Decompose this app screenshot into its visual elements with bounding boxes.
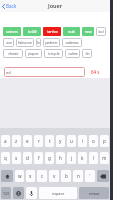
staticText: h	[59, 155, 62, 161]
staticText: calme	[68, 51, 78, 56]
button[interactable]: s	[12, 152, 21, 164]
staticText: Jouer	[48, 2, 63, 9]
button[interactable]: m	[100, 152, 109, 164]
staticText: univers	[6, 29, 18, 34]
button[interactable]: i	[78, 135, 87, 147]
button[interactable]: f	[34, 152, 43, 164]
button[interactable]: Next keyboard	[13, 187, 24, 199]
staticText: retour	[89, 191, 100, 196]
staticText: z	[15, 138, 18, 144]
staticText: brûlé	[28, 29, 37, 34]
button[interactable]: 123	[1, 187, 11, 199]
staticText: r	[38, 138, 40, 144]
button[interactable]: choisir	[3, 49, 23, 58]
staticText: b	[65, 173, 68, 179]
button[interactable]: g	[45, 152, 54, 164]
button[interactable]: calme	[65, 49, 80, 58]
button[interactable]: brûlé	[23, 27, 41, 36]
button[interactable]: tricycle	[44, 49, 63, 58]
button[interactable]: rose	[82, 27, 94, 36]
button[interactable]: n	[73, 170, 83, 182]
button[interactable]: Delete	[97, 170, 109, 182]
staticText: m	[102, 155, 107, 161]
staticText: y	[59, 138, 62, 144]
button[interactable]: t	[45, 135, 54, 147]
button[interactable]: jardiner	[43, 38, 60, 47]
button[interactable]: x	[26, 170, 35, 182]
button[interactable]: l	[89, 152, 98, 164]
staticText: q	[4, 155, 7, 161]
staticText: n	[77, 173, 80, 179]
staticText: t	[49, 138, 51, 144]
button[interactable]: j	[67, 152, 76, 164]
button[interactable]: univers	[3, 27, 21, 36]
staticText: cadenas	[65, 40, 79, 45]
staticText: i	[82, 138, 84, 144]
button[interactable]: Back	[2, 3, 17, 9]
staticText: le	[37, 40, 40, 45]
staticText: d	[26, 155, 29, 161]
button[interactable]: le	[36, 38, 41, 47]
staticText: g	[48, 155, 51, 161]
staticText: espace	[52, 191, 65, 196]
staticText: tricycle	[48, 51, 60, 56]
button[interactable]: y	[56, 135, 65, 147]
button[interactable]: h	[56, 152, 65, 164]
staticText: Back	[6, 3, 17, 9]
staticText: e	[26, 138, 29, 144]
button[interactable]: ecl	[6, 67, 83, 77]
staticText: j	[71, 155, 73, 161]
button[interactable]: e	[23, 135, 32, 147]
other: Back	[2, 4, 5, 9]
button[interactable]: cadenas	[62, 38, 82, 47]
staticText: rose	[85, 29, 92, 34]
staticText: a	[4, 138, 7, 144]
button[interactable]: z	[12, 135, 21, 147]
staticText: 64 s	[91, 69, 100, 75]
staticText: v	[53, 173, 56, 179]
staticText: x	[29, 173, 32, 179]
staticText: bol	[98, 29, 104, 34]
button[interactable]: a	[1, 135, 10, 147]
staticText: f	[38, 155, 40, 161]
button[interactable]: p	[100, 135, 109, 147]
button[interactable]: q	[1, 152, 10, 164]
staticText: c	[41, 173, 44, 179]
staticText: u	[70, 138, 73, 144]
button[interactable]: tartine	[43, 27, 61, 36]
button[interactable]: nuit	[63, 27, 80, 36]
button[interactable]: piquer	[25, 49, 42, 58]
button[interactable]: o	[89, 135, 98, 147]
button[interactable]: espace	[39, 187, 77, 199]
staticText: choisir	[8, 51, 19, 56]
staticText: k	[81, 155, 84, 161]
button[interactable]: u	[67, 135, 76, 147]
staticText: l	[93, 155, 95, 161]
staticText: 123	[3, 191, 9, 196]
button[interactable]: fabscron	[16, 38, 34, 47]
button[interactable]: v	[49, 170, 59, 182]
staticText: s	[15, 155, 18, 161]
staticText: nuit	[68, 29, 75, 34]
button[interactable]: c	[37, 170, 47, 182]
button[interactable]: '	[85, 170, 95, 182]
button[interactable]: ose	[3, 38, 14, 47]
staticText: o	[92, 138, 95, 144]
button[interactable]: d	[23, 152, 32, 164]
button[interactable]: r	[34, 135, 43, 147]
staticText: '	[89, 173, 91, 179]
button[interactable]: b	[61, 170, 71, 182]
staticText: p	[103, 138, 106, 144]
staticText: piquer	[28, 51, 39, 56]
staticText: fin	[85, 51, 90, 56]
staticText: jardiner	[45, 40, 58, 45]
staticText: tartine	[47, 29, 58, 34]
button[interactable]: retour	[79, 187, 109, 199]
staticText: ecl	[6, 70, 12, 75]
button[interactable]: w	[15, 170, 24, 182]
button[interactable]: bol	[96, 27, 106, 36]
button[interactable]: Dictate	[26, 187, 37, 199]
button[interactable]: k	[78, 152, 87, 164]
button[interactable]: Shift	[1, 170, 13, 182]
button[interactable]: fin	[82, 49, 92, 58]
